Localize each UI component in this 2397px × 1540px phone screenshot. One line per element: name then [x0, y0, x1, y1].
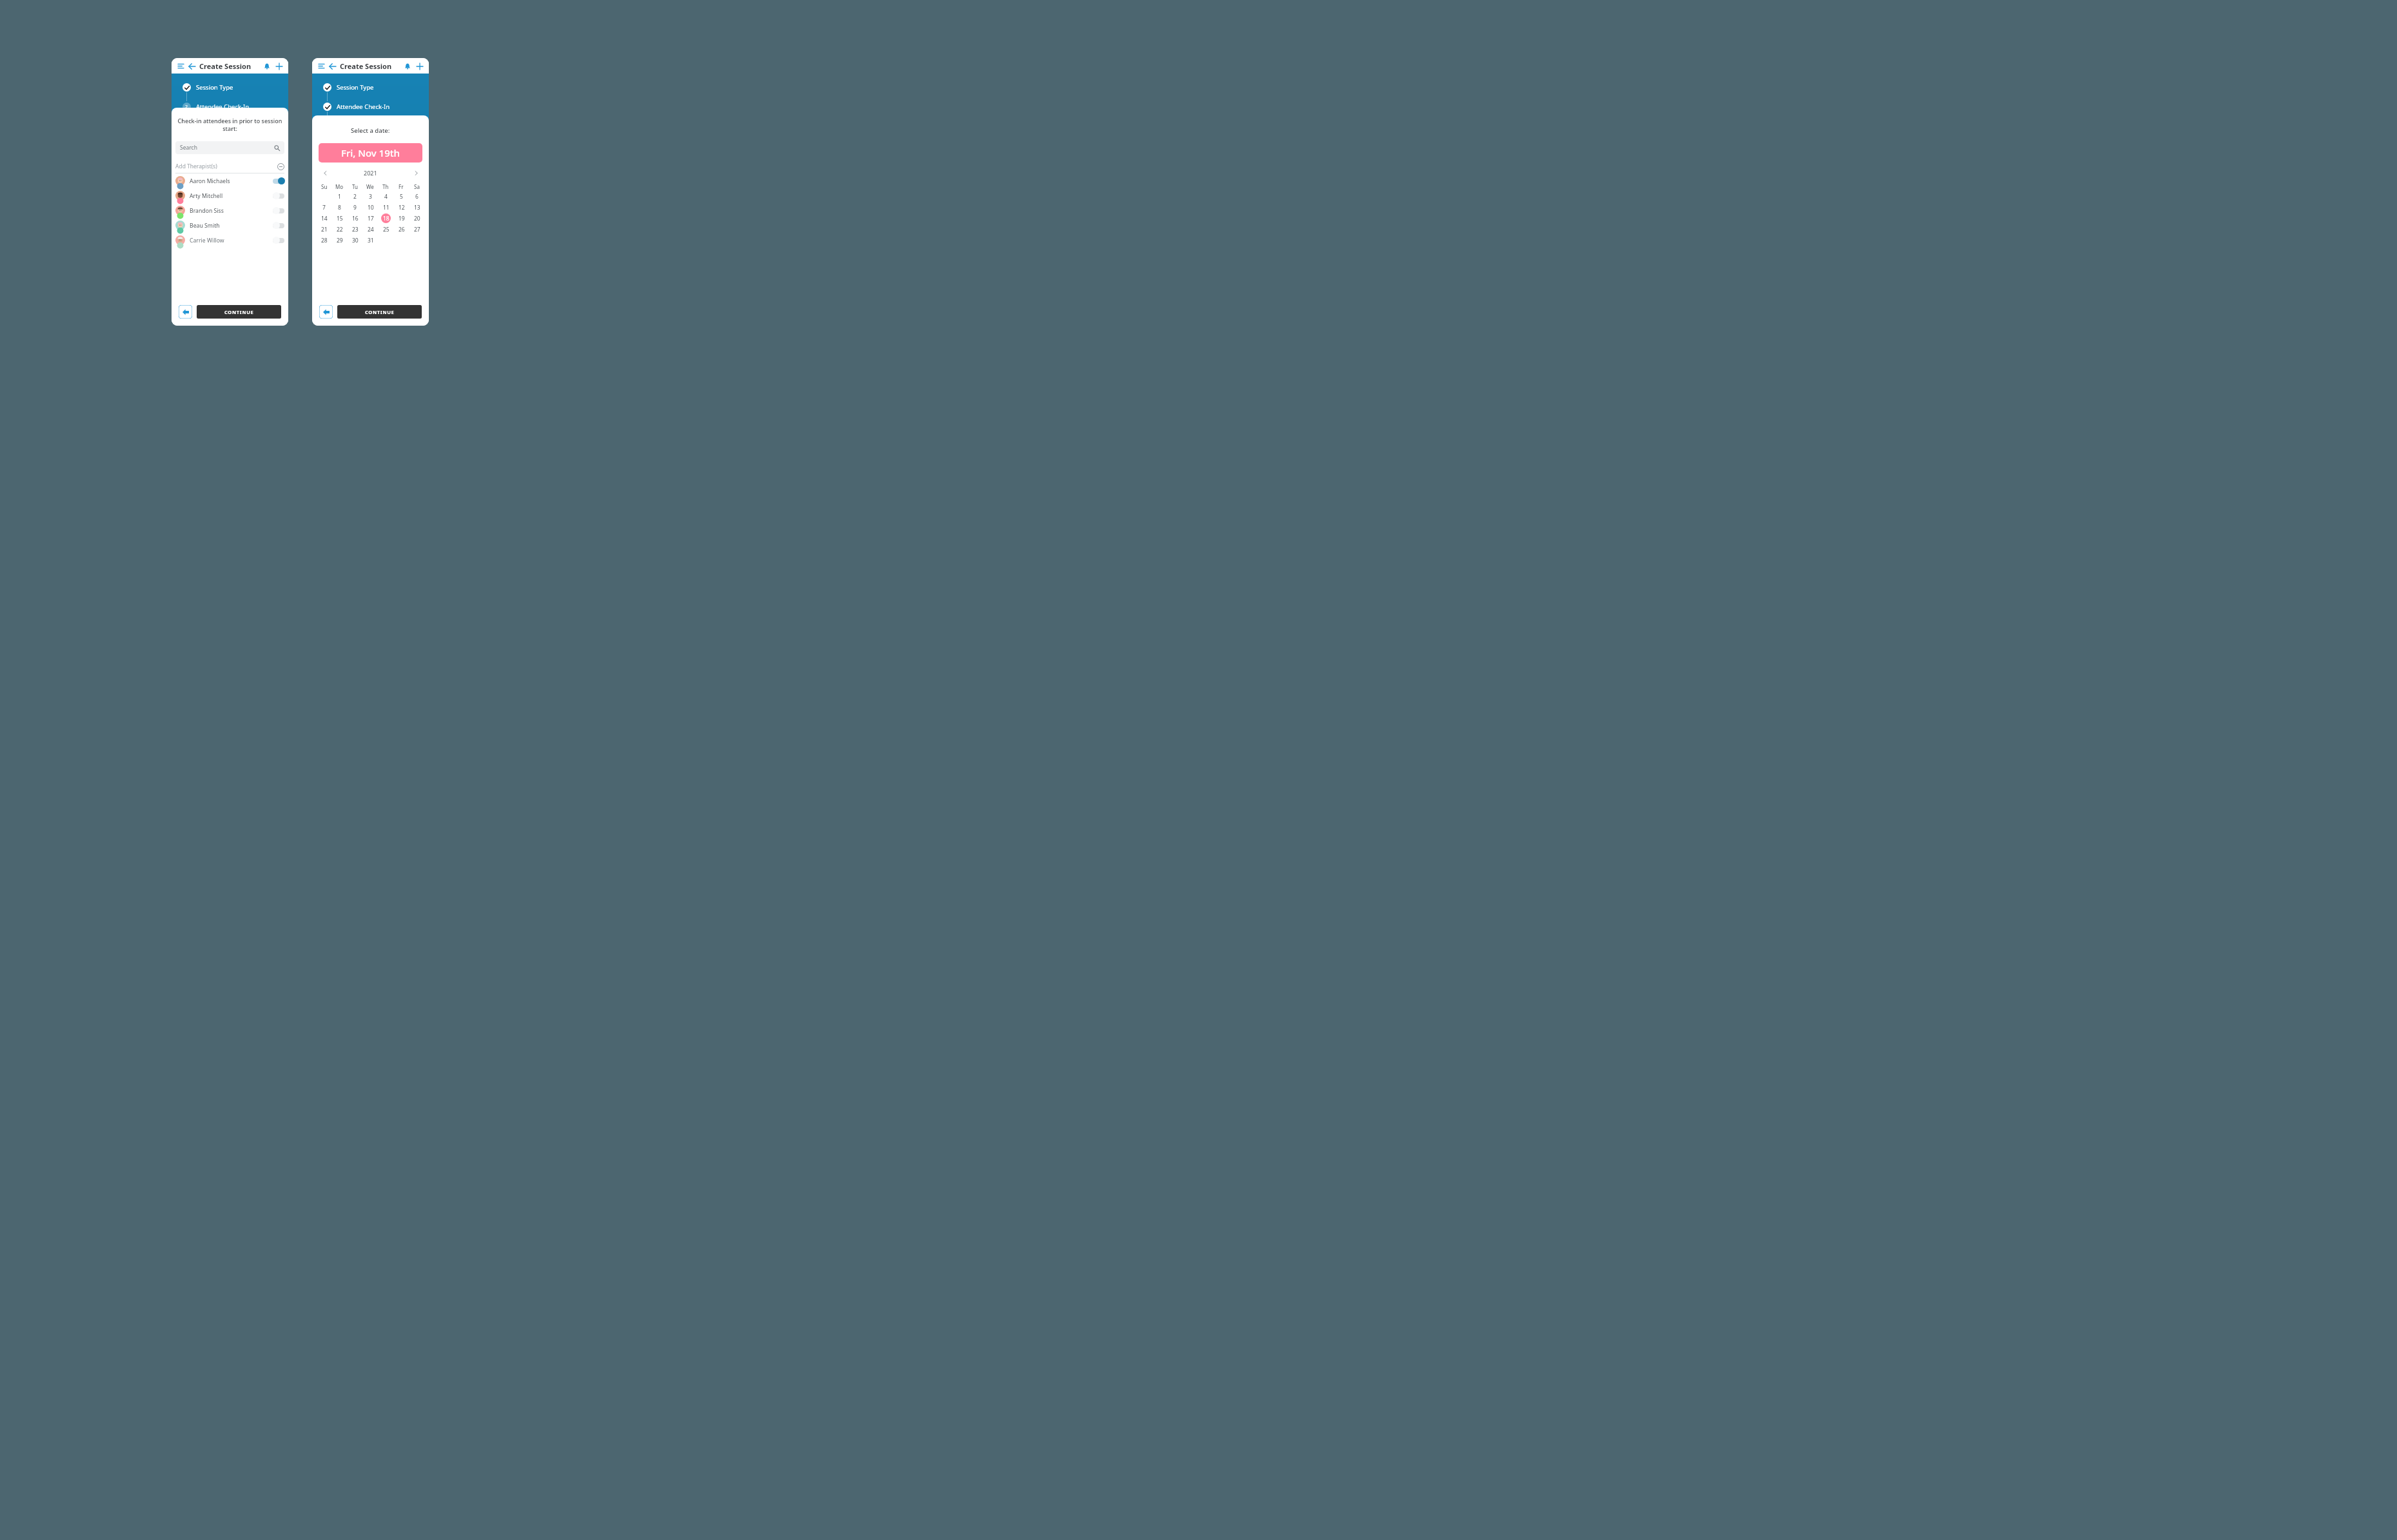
button[interactable]: Brandon Siss [175, 203, 284, 218]
button[interactable]: Notifications [262, 61, 271, 71]
staticText: Beau Smith [190, 222, 220, 230]
button[interactable]: 23 [350, 224, 360, 234]
staticText: 1 [338, 193, 341, 201]
button[interactable]: 12 [397, 202, 406, 212]
button[interactable]: Add [274, 61, 284, 71]
button[interactable]: Toggle attendee [273, 237, 284, 244]
staticText: We [366, 183, 374, 190]
button[interactable]: 7 [319, 202, 329, 212]
staticText: 24 [368, 226, 374, 233]
staticText: 18 [383, 215, 390, 222]
staticText: Search [180, 144, 197, 152]
button[interactable]: Back [179, 305, 192, 319]
button[interactable]: Back [328, 61, 337, 71]
staticText: Aaron Michaels [190, 177, 230, 185]
button[interactable]: 13 [412, 202, 422, 212]
button[interactable]: 4 [381, 192, 391, 201]
button[interactable]: CONTINUE [337, 305, 422, 319]
button[interactable]: 20 [412, 213, 422, 223]
button[interactable]: 31 [366, 235, 375, 245]
staticText: 10 [368, 204, 374, 212]
button[interactable]: 22 [335, 224, 344, 234]
button[interactable]: Fri, Nov 19th [319, 143, 422, 163]
staticText: Fri, Nov 19th [341, 146, 400, 159]
staticText: 9 [353, 204, 357, 212]
button[interactable]: 10 [366, 202, 375, 212]
button[interactable]: 4 [323, 140, 374, 150]
button[interactable]: 3 [182, 121, 232, 131]
staticText: CONTINUE [224, 309, 254, 315]
button[interactable]: Beau Smith [175, 218, 284, 233]
button[interactable]: 11 [381, 202, 391, 212]
staticText: Add Therapist(s) [175, 163, 217, 170]
button[interactable]: Attendee Check-In [323, 101, 390, 112]
staticText: 21 [321, 226, 328, 233]
button[interactable]: 1 [335, 192, 344, 201]
button[interactable]: Toggle attendee [273, 192, 284, 199]
button[interactable]: Notifications [402, 61, 412, 71]
button[interactable]: Aaron Michaels [175, 173, 284, 188]
button[interactable]: 5 [397, 192, 406, 201]
staticText: Session Start [337, 141, 374, 150]
button[interactable]: 9 [350, 202, 360, 212]
staticText: 22 [337, 226, 343, 233]
staticText: 4 [384, 193, 388, 201]
button[interactable]: Previous year [321, 169, 329, 177]
button[interactable]: Add [415, 61, 424, 71]
button[interactable]: Toggle attendee [273, 207, 284, 214]
button[interactable]: 30 [350, 235, 360, 245]
button[interactable]: 6 [412, 192, 422, 201]
staticText: CONTINUE [365, 309, 395, 315]
button[interactable]: Next year [412, 169, 420, 177]
staticText: 2021 [364, 169, 377, 177]
staticText: 3 [369, 193, 372, 201]
button[interactable]: 2 [182, 101, 250, 112]
staticText: 14 [321, 215, 328, 222]
button[interactable]: Arty Mitchell [175, 188, 284, 203]
button[interactable]: 26 [397, 224, 406, 234]
button[interactable]: 27 [412, 224, 422, 234]
button[interactable]: Toggle attendee [273, 177, 284, 184]
button[interactable]: 16 [350, 213, 360, 223]
staticText: Arty Mitchell [190, 192, 223, 200]
button[interactable]: 29 [335, 235, 344, 245]
staticText: 28 [321, 237, 328, 244]
button[interactable]: 14 [319, 213, 329, 223]
staticText: Fr [399, 183, 404, 190]
staticText: Mo [335, 183, 344, 190]
button[interactable]: Add Therapist(s) [175, 160, 284, 173]
staticText: 11 [383, 204, 390, 212]
button[interactable]: Back [319, 305, 333, 319]
button[interactable]: Toggle attendee [273, 222, 284, 229]
button[interactable]: 25 [381, 224, 391, 234]
button[interactable]: Session Type [323, 82, 374, 92]
button[interactable]: 3 [323, 121, 372, 131]
button[interactable]: 8 [335, 202, 344, 212]
staticText: Session Type [337, 83, 374, 92]
button[interactable]: 15 [335, 213, 344, 223]
button[interactable]: Back [187, 61, 197, 71]
button[interactable]: Search [180, 141, 280, 154]
button[interactable]: 28 [319, 235, 329, 245]
staticText: 7 [322, 204, 326, 212]
staticText: 19 [399, 215, 405, 222]
staticText: 16 [352, 215, 359, 222]
button[interactable]: 21 [319, 224, 329, 234]
button[interactable]: 18 [381, 213, 391, 223]
button[interactable]: 2 [350, 192, 360, 201]
button[interactable]: Menu [176, 61, 186, 71]
staticText: Tu [352, 183, 358, 190]
button[interactable]: 24 [366, 224, 375, 234]
button[interactable]: Session Type [182, 82, 233, 92]
button[interactable]: 3 [366, 192, 375, 201]
staticText: 20 [414, 215, 420, 222]
staticText: Create Session [340, 61, 392, 71]
button[interactable]: Carrie Willow [175, 233, 284, 248]
staticText: 13 [414, 204, 420, 212]
button[interactable]: 17 [366, 213, 375, 223]
button[interactable]: Menu [317, 61, 326, 71]
button[interactable]: 19 [397, 213, 406, 223]
staticText: Attendee Check-In [196, 103, 250, 111]
button[interactable]: CONTINUE [197, 305, 281, 319]
